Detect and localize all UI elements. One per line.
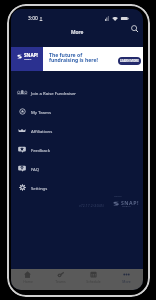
staticText: LEARN MORE [120,59,139,63]
staticText: v72.17.2 (4045) [79,203,104,208]
button[interactable]: FAQ [11,159,143,178]
staticText: Feedback [31,147,50,153]
staticText: Settings [31,185,48,191]
staticText: powered by [114,195,122,197]
staticText: SNAP! [121,199,139,206]
staticText: 3:00 [28,15,38,22]
staticText: Affiliations [31,128,53,134]
staticText: Join a Raise Fundraiser [31,90,77,96]
button[interactable]: LEARN MORE [118,57,141,65]
button[interactable]: Join a Raise Fundraiser [11,83,143,102]
staticText: Home [23,279,33,284]
button[interactable]: SNAP! [11,47,143,71]
staticText: fundraising is here! [49,57,98,64]
staticText: SNAP! [24,52,38,58]
button[interactable]: Schedule [77,269,110,290]
staticText: Schedule [86,279,101,284]
staticText: MOBILE [24,58,32,60]
button[interactable]: My Teams [11,102,143,121]
button[interactable]: Settings [11,178,143,197]
staticText: MOBILE [122,205,131,208]
staticText: More [71,29,84,36]
staticText: My Teams [31,109,51,115]
button[interactable]: Feedback [11,140,143,159]
button[interactable]: Teams [44,269,77,290]
button[interactable]: More [110,269,143,290]
button[interactable]: Affiliations [11,121,143,140]
staticText: More [122,279,131,284]
staticText: FAQ [31,166,40,172]
staticText: Teams [55,279,66,284]
staticText: The future of [49,52,83,59]
button[interactable]: Search [129,23,140,34]
button[interactable]: Home [11,269,44,290]
